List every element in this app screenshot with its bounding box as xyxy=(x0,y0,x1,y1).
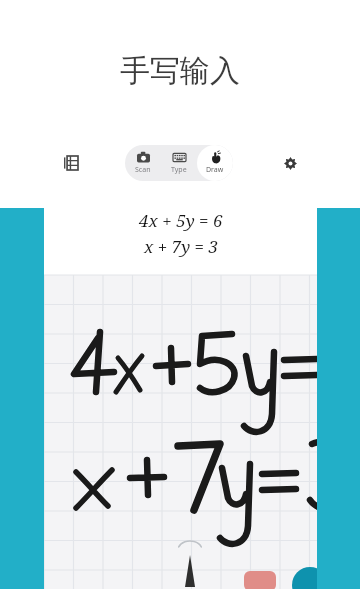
staticText: x + 7y = 3 xyxy=(144,235,218,258)
staticText: Type xyxy=(171,165,187,175)
button[interactable]: Scan xyxy=(125,145,161,181)
button[interactable]: Draw xyxy=(197,145,233,181)
button[interactable]: History list xyxy=(54,146,88,180)
button[interactable]: Type xyxy=(161,145,197,181)
button[interactable]: Settings xyxy=(273,146,307,180)
staticText: 手写输入 xyxy=(120,52,240,90)
staticText: Draw xyxy=(206,165,224,175)
staticText: Scan xyxy=(135,165,151,175)
staticText: 4x + 5y = 6 xyxy=(139,209,223,232)
